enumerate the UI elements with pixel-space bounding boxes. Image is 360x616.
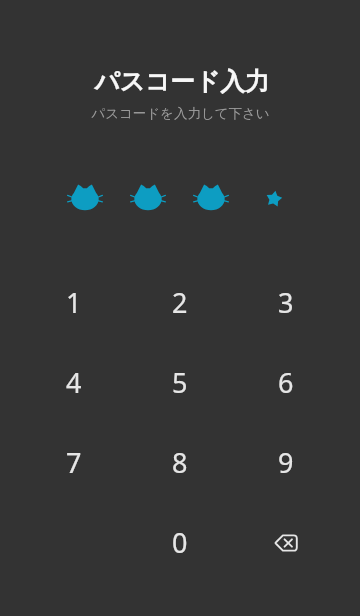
other: Backspace	[272, 532, 300, 554]
staticText: パスコードを入力して下さい	[91, 105, 270, 122]
button[interactable]: 4	[21, 342, 127, 422]
staticText: 3	[278, 284, 294, 321]
button[interactable]: 3	[233, 262, 339, 342]
staticText: 6	[278, 364, 294, 401]
button[interactable]: 0	[127, 502, 233, 582]
staticText: 2	[172, 284, 188, 321]
button[interactable]: 9	[233, 422, 339, 502]
staticText: 9	[278, 444, 294, 481]
staticText: 7	[66, 444, 82, 481]
button[interactable]: 2	[127, 262, 233, 342]
button[interactable]: 5	[127, 342, 233, 422]
staticText: 0	[172, 524, 188, 561]
button[interactable]: 1	[21, 262, 127, 342]
button[interactable]: Delete	[233, 502, 339, 582]
button[interactable]: 8	[127, 422, 233, 502]
button[interactable]: 7	[21, 422, 127, 502]
button[interactable]: 6	[233, 342, 339, 422]
staticText: 4	[66, 364, 82, 401]
staticText: パスコード入力	[94, 66, 270, 97]
staticText: 8	[172, 444, 188, 481]
staticText: 5	[172, 364, 188, 401]
staticText: 1	[66, 284, 82, 321]
